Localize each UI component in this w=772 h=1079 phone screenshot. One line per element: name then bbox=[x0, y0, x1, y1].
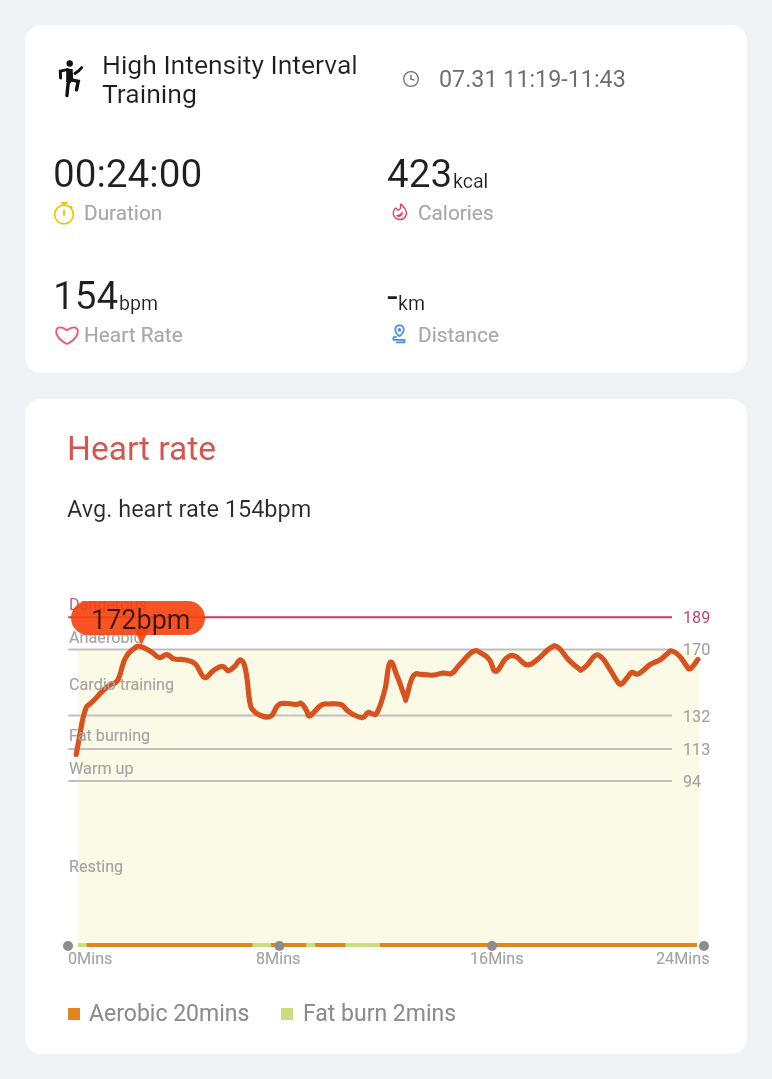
staticText: 189 bbox=[683, 608, 711, 627]
staticText: 172bpm bbox=[91, 604, 191, 635]
staticText: Anaerobic bbox=[69, 628, 142, 647]
staticText: 154 bbox=[53, 273, 119, 318]
staticText: 8Mins bbox=[256, 949, 301, 968]
staticText: High Intensity Interval Training bbox=[102, 49, 366, 109]
staticText: - bbox=[387, 273, 398, 318]
staticText: Distance bbox=[418, 323, 499, 347]
staticText: Dangerous bbox=[69, 595, 147, 614]
staticText: 132 bbox=[683, 707, 711, 726]
staticText: km bbox=[398, 292, 425, 315]
staticText: Warm up bbox=[69, 759, 134, 778]
staticText: Heart Rate bbox=[84, 323, 183, 347]
staticText: 24Mins bbox=[656, 949, 710, 968]
staticText: Heart rate bbox=[67, 429, 216, 468]
staticText: Fat burn 2mins bbox=[303, 1000, 457, 1027]
staticText: 07.31 11:19-11:43 bbox=[439, 65, 626, 92]
staticText: Aerobic 20mins bbox=[89, 1000, 250, 1027]
staticText: Cardio training bbox=[69, 675, 175, 694]
staticText: 170 bbox=[683, 640, 711, 659]
staticText: 0Mins bbox=[68, 949, 113, 968]
staticText: 94 bbox=[683, 772, 702, 791]
staticText: bpm bbox=[119, 292, 158, 315]
button[interactable]: Running workout bbox=[25, 25, 747, 373]
button[interactable]: Heart rate bbox=[25, 399, 747, 1054]
staticText: 00:24:00 bbox=[53, 151, 203, 196]
staticText: 423 bbox=[387, 151, 453, 196]
staticText: Resting bbox=[69, 857, 124, 876]
staticText: Calories bbox=[418, 201, 494, 225]
staticText: Avg. heart rate 154bpm bbox=[67, 495, 312, 523]
other: Running workout bbox=[60, 58, 82, 96]
staticText: 113 bbox=[683, 740, 711, 759]
staticText: Fat burning bbox=[69, 726, 151, 745]
staticText: 16Mins bbox=[470, 949, 524, 968]
staticText: Duration bbox=[84, 201, 163, 225]
staticText: kcal bbox=[453, 170, 489, 193]
